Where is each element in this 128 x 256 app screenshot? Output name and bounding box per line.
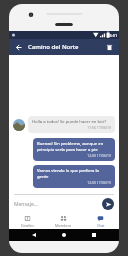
button[interactable]: Delete bbox=[104, 42, 115, 53]
button[interactable]: Back bbox=[13, 42, 24, 53]
button[interactable]: Home bbox=[59, 230, 69, 240]
button[interactable]: Back bbox=[29, 230, 39, 240]
staticText: 12:00 17/06/19 bbox=[37, 153, 111, 158]
button[interactable]: Send bbox=[102, 198, 114, 210]
staticText: Vamos viendo lo que prefiera la gente bbox=[37, 168, 111, 180]
button[interactable]: Holla a todos! Se puede hacer en bici? bbox=[28, 116, 115, 133]
staticText: Chat bbox=[97, 223, 105, 228]
button[interactable]: Recents bbox=[89, 230, 99, 240]
button[interactable]: Miembros bbox=[45, 214, 82, 229]
staticText: Detalles bbox=[21, 223, 34, 228]
staticText: Miembros bbox=[55, 223, 72, 228]
button[interactable]: Chat bbox=[82, 214, 119, 229]
staticText: 11:56 17/06/19 bbox=[32, 125, 111, 130]
button[interactable]: Mensaje... bbox=[14, 197, 102, 211]
staticText: Mensaje... bbox=[14, 201, 38, 208]
button[interactable]: Buenas! Sin problema, aunque en principi… bbox=[33, 138, 115, 161]
button[interactable]: Detalles bbox=[9, 214, 45, 229]
staticText: 13:01 bbox=[107, 33, 118, 38]
staticText: 12:00 17/06/19 bbox=[37, 180, 111, 185]
staticText: Holla a todos! Se puede hacer en bici? bbox=[32, 119, 107, 125]
staticText: Camino del Norte bbox=[28, 43, 104, 51]
button[interactable]: Vamos viendo lo que prefiera la gente bbox=[33, 165, 115, 188]
staticText: Buenas! Sin problema, aunque en principi… bbox=[37, 141, 111, 153]
